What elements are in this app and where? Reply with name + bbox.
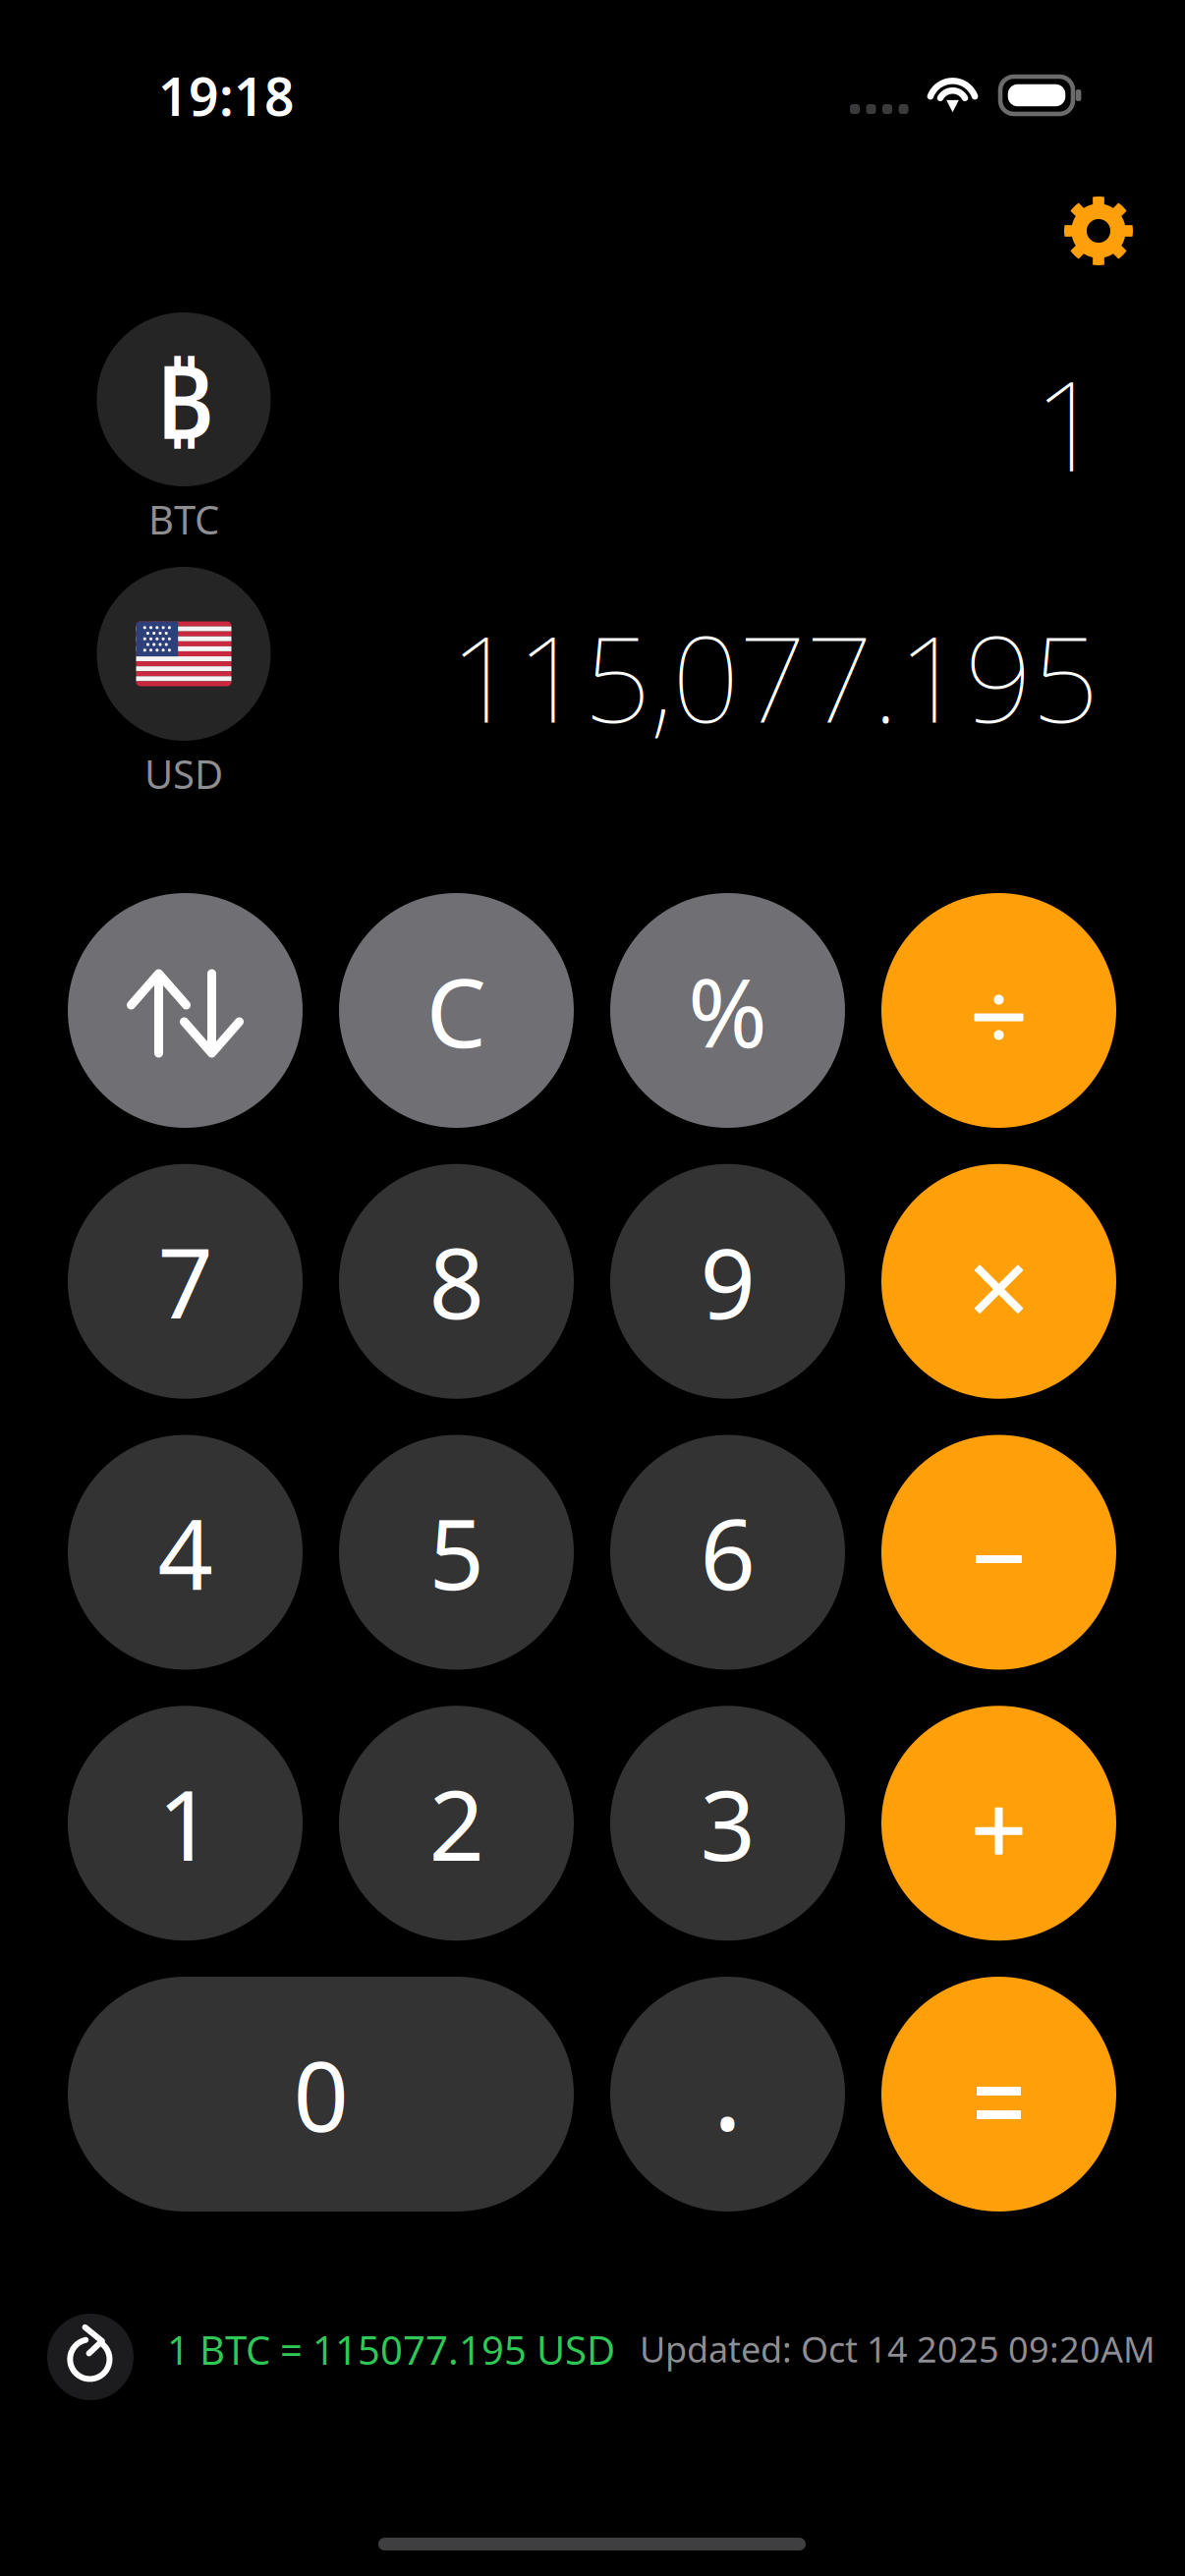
staticText: 1 (158, 1759, 213, 1887)
button[interactable] (881, 893, 1116, 1128)
staticText: USD (144, 748, 223, 800)
staticText: Updated: Oct 14 2025 09:20AM (640, 2325, 1156, 2372)
button[interactable] (881, 1435, 1116, 1670)
button[interactable] (881, 1706, 1116, 1941)
staticText: 19:18 (158, 61, 295, 130)
button[interactable]: 3 (610, 1706, 845, 1941)
staticText: % (688, 947, 767, 1074)
staticText: 9 (700, 1217, 755, 1346)
button[interactable]: % (610, 893, 845, 1128)
staticText: . (712, 2011, 743, 2161)
staticText: 6 (700, 1488, 755, 1617)
button[interactable]: USD (95, 567, 272, 800)
button[interactable]: 1 (68, 1706, 303, 1941)
staticText: 115,077.195 (450, 599, 1099, 755)
staticText: BTC (148, 493, 219, 545)
staticText: 7 (158, 1217, 213, 1346)
staticText: 2 (429, 1759, 484, 1887)
button[interactable] (881, 1164, 1116, 1399)
button[interactable]: 8 (339, 1164, 574, 1399)
button[interactable]: . (610, 1977, 845, 2212)
staticText: 1 BTC = 115077.195 USD (167, 2324, 615, 2376)
staticText: 3 (700, 1759, 755, 1887)
button[interactable]: C (339, 893, 574, 1128)
staticText: 0 (293, 2030, 348, 2158)
button[interactable]: Settings (1035, 173, 1162, 289)
button[interactable]: 9 (610, 1164, 845, 1399)
staticText: 8 (429, 1217, 484, 1346)
staticText: ₿ (155, 331, 213, 467)
button[interactable]: 0 (68, 1977, 574, 2212)
button[interactable]: Refresh exchange rate (47, 2314, 134, 2400)
button[interactable]: 7 (68, 1164, 303, 1399)
staticText: 1 (1034, 342, 1103, 505)
button[interactable]: 4 (68, 1435, 303, 1670)
button[interactable] (881, 1977, 1116, 2212)
button[interactable]: ₿ (95, 312, 272, 545)
staticText: 4 (158, 1488, 213, 1617)
staticText: 5 (429, 1488, 484, 1617)
staticText: C (426, 947, 487, 1074)
button[interactable]: 5 (339, 1435, 574, 1670)
button[interactable]: 2 (339, 1706, 574, 1941)
button[interactable] (68, 893, 303, 1128)
button[interactable]: 6 (610, 1435, 845, 1670)
